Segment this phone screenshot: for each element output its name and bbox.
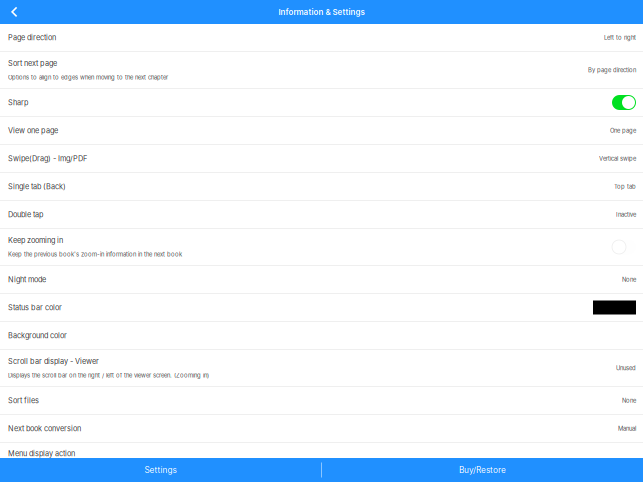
staticText: Top tab: [614, 183, 636, 190]
staticText: One page: [610, 127, 636, 134]
staticText: Scroll bar display - Viewer: [8, 357, 99, 366]
staticText: Status bar color: [8, 303, 62, 312]
button[interactable]: Next book conversion: [0, 415, 643, 443]
button[interactable]: Buy/Restore: [322, 458, 643, 482]
staticText: Double tap: [8, 210, 43, 219]
staticText: Settings: [144, 465, 176, 475]
button[interactable]: Scroll bar display - Viewer: [0, 350, 643, 387]
button[interactable]: Background color: [0, 322, 643, 350]
staticText: Options to align to edges when moving to…: [8, 74, 168, 81]
staticText: None: [622, 397, 636, 404]
staticText: Single tab (Back): [8, 182, 66, 191]
button[interactable]: Page direction: [0, 24, 643, 52]
button[interactable]: Night mode: [0, 266, 643, 294]
button[interactable]: Sort next page: [0, 52, 643, 89]
staticText: Background color: [8, 331, 67, 340]
staticText: By page direction: [588, 66, 636, 74]
button[interactable]: Sort files: [0, 387, 643, 415]
staticText: Keep the previous book's zoom-in informa…: [8, 251, 182, 258]
staticText: Sharp: [8, 98, 28, 107]
staticText: Manual: [618, 425, 636, 432]
button[interactable]: Sharp: [0, 89, 643, 117]
staticText: Night mode: [8, 275, 46, 284]
button[interactable]: Swipe(Drag) - Img/PDF: [0, 145, 643, 173]
staticText: Left to right: [604, 34, 636, 41]
staticText: Sort files: [8, 396, 39, 405]
staticText: Keep zooming in: [8, 236, 63, 245]
button[interactable]: Keep zooming in: [0, 229, 643, 266]
button[interactable]: Menu display action: [0, 443, 643, 465]
button[interactable]: Settings: [0, 458, 321, 482]
button[interactable]: Status bar color: [0, 294, 643, 322]
button[interactable]: View one page: [0, 117, 643, 145]
staticText: Page direction: [8, 33, 56, 42]
staticText: Inactive: [616, 211, 636, 218]
staticText: Next book conversion: [8, 424, 81, 433]
staticText: View one page: [8, 126, 58, 135]
staticText: Buy/Restore: [459, 465, 506, 475]
button[interactable]: Double tap: [0, 201, 643, 229]
staticText: Vertical swipe: [599, 155, 636, 162]
staticText: Swipe(Drag) - Img/PDF: [8, 154, 87, 163]
staticText: Displays the scroll bar on the right / l…: [8, 372, 209, 379]
button[interactable]: Back: [0, 0, 26, 24]
button[interactable]: Single tab (Back): [0, 173, 643, 201]
staticText: Sort next page: [8, 59, 57, 68]
staticText: Unused: [616, 364, 636, 372]
staticText: Menu display action: [8, 449, 75, 458]
staticText: Information & Settings: [278, 7, 364, 17]
staticText: None: [622, 276, 636, 283]
